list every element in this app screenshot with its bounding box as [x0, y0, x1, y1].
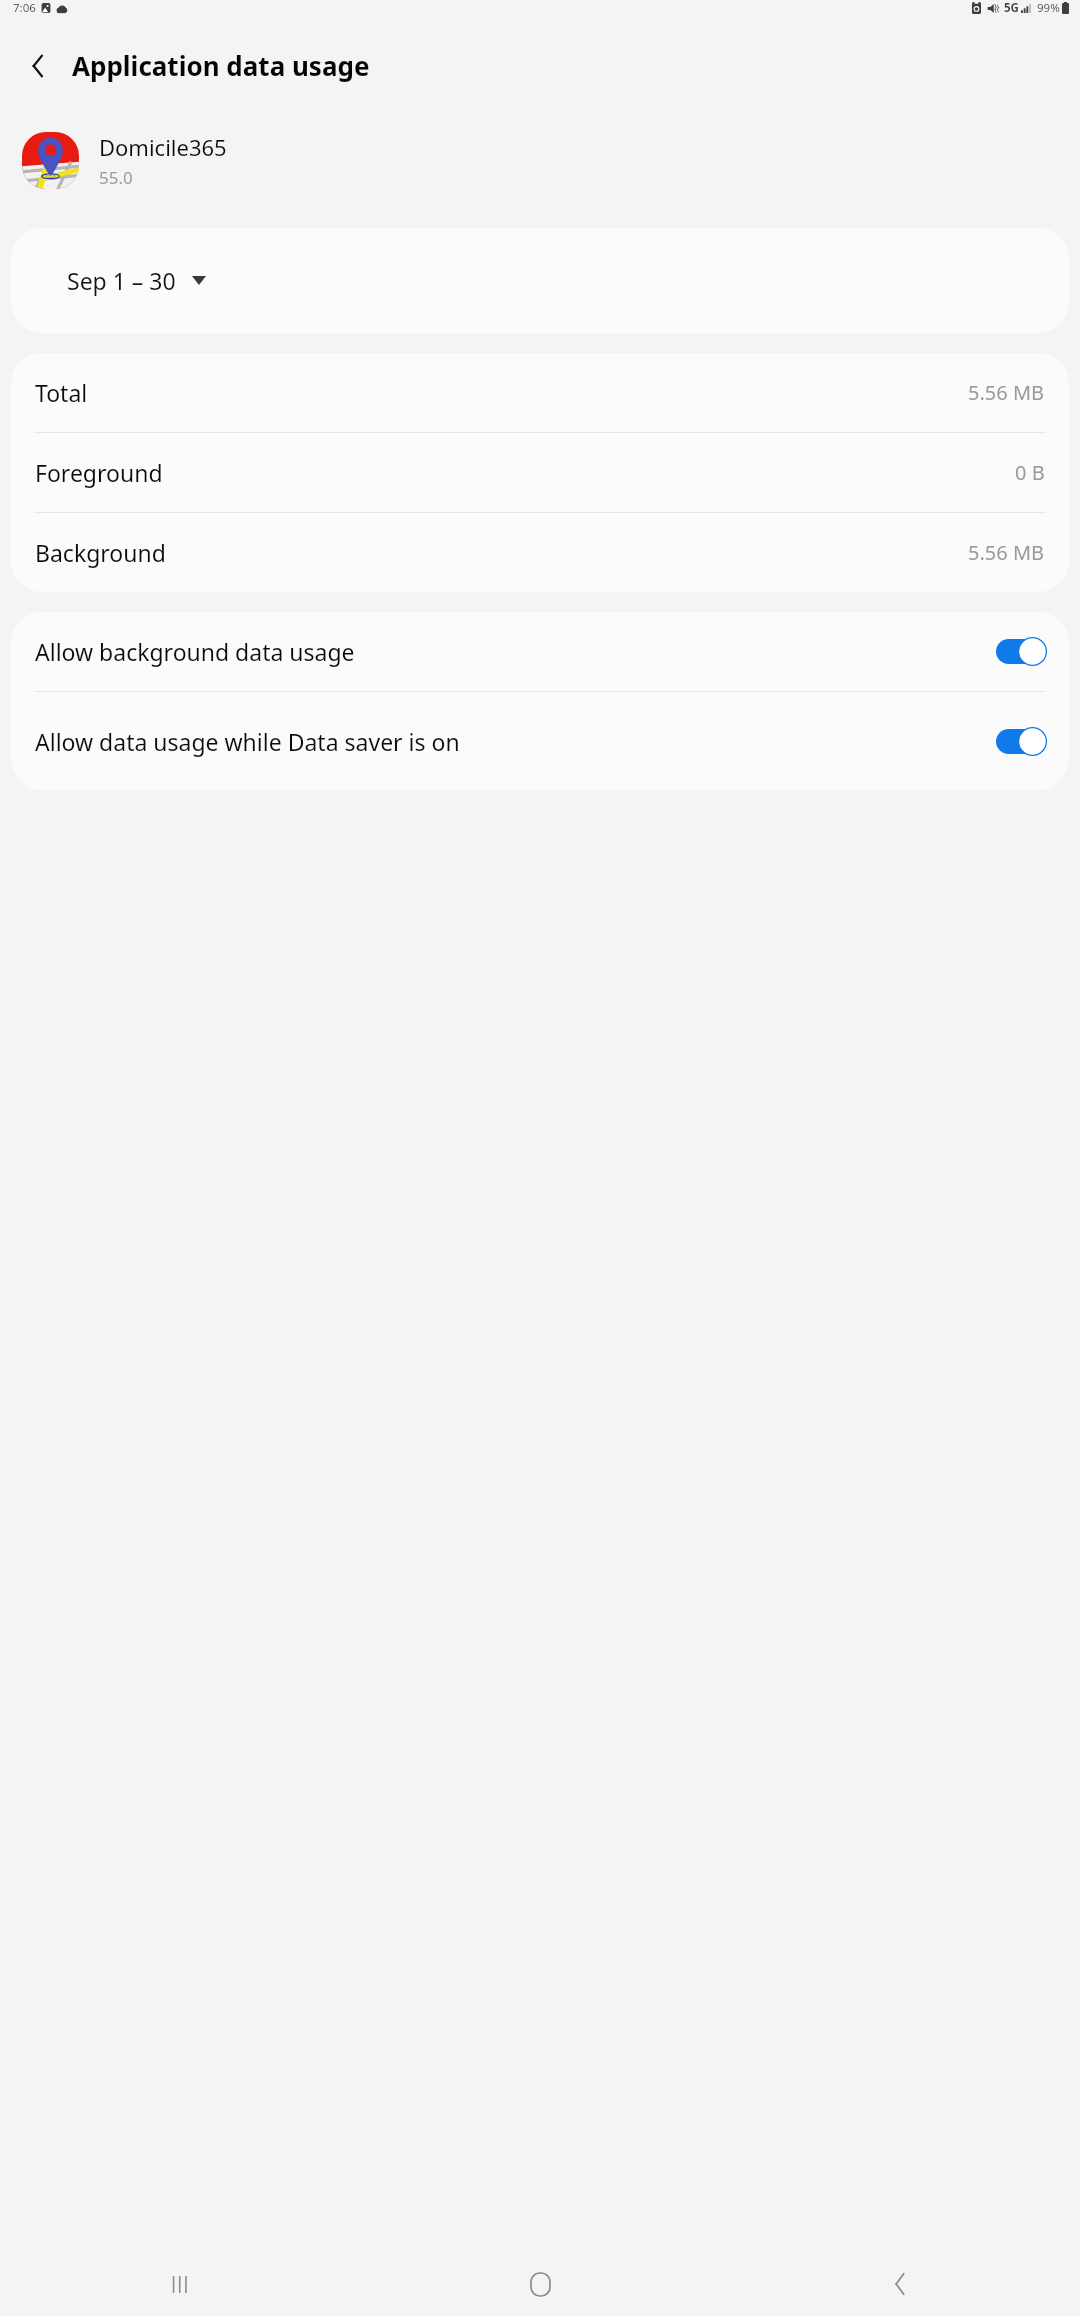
staticText: Background: [35, 537, 166, 568]
staticText: Total: [35, 377, 88, 408]
staticText: 5.56 MB: [968, 539, 1045, 566]
button[interactable]: Back: [866, 2252, 934, 2316]
staticText: Allow background data usage: [35, 636, 978, 667]
button[interactable]: Allow background data usage: [11, 612, 1069, 691]
staticText: 55.0: [99, 166, 133, 189]
staticText: 7:06: [13, 0, 36, 16]
button[interactable]: Sep 1 – 30: [11, 228, 1069, 333]
button[interactable]: Foreground: [11, 433, 1069, 512]
staticText: Foreground: [35, 457, 163, 488]
staticText: 99%: [1037, 0, 1060, 16]
staticText: 0 B: [1015, 459, 1045, 486]
staticText: Application data usage: [72, 48, 370, 83]
button[interactable]: Recents: [146, 2252, 214, 2316]
staticText: Domicile365: [99, 132, 227, 162]
button[interactable]: Home: [506, 2252, 574, 2316]
staticText: Allow data usage while Data saver is on: [35, 726, 978, 757]
button[interactable]: Allow data usage while Data saver is on: [11, 692, 1069, 790]
button[interactable]: Back: [14, 42, 62, 90]
other: Toggle on: [996, 727, 1047, 756]
button[interactable]: Total: [11, 353, 1069, 432]
button[interactable]: Background: [11, 513, 1069, 592]
staticText: Sep 1 – 30: [67, 265, 176, 296]
staticText: 5G: [1004, 0, 1019, 16]
staticText: 5.56 MB: [968, 379, 1045, 406]
other: Toggle on: [996, 637, 1047, 666]
